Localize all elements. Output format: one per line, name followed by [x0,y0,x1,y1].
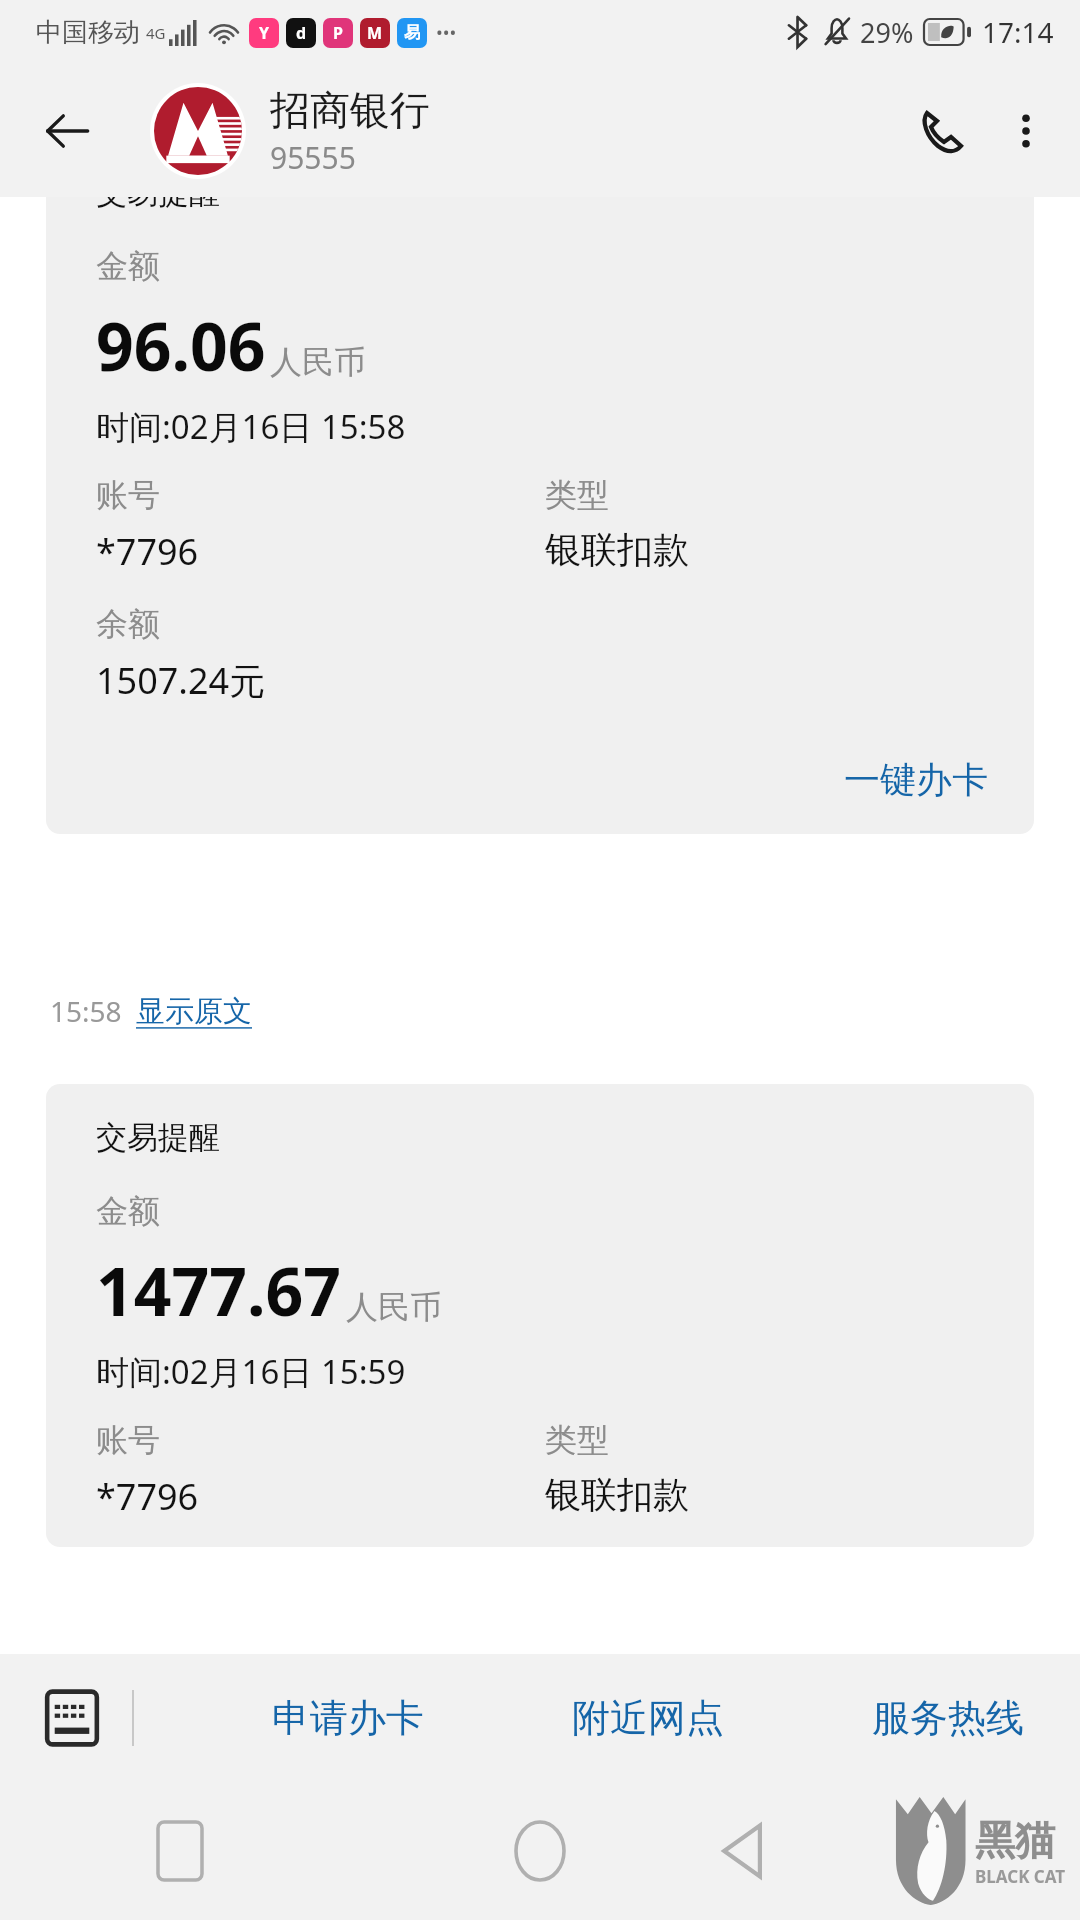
staticText: 96.06 [96,300,266,390]
staticText: BLACK CAT [975,1865,1066,1888]
button[interactable]: 显示原文 [136,993,252,1030]
staticText: 交易提醒 [96,197,220,212]
button[interactable]: Home [360,1782,720,1920]
button[interactable]: Keyboard [34,1680,110,1756]
button[interactable]: More options [986,91,1066,171]
staticText: 黑猫 [975,1815,1055,1865]
staticText: 4G [146,23,166,43]
staticText: 人民币 [270,342,366,382]
button[interactable]: 一键办卡 [838,751,994,808]
staticText: 易 [404,23,420,43]
staticText: 显示原文 [136,993,252,1030]
staticText: 账号 [96,1420,160,1460]
button[interactable]: 申请办卡 [262,1680,434,1756]
staticText: 17:14 [982,13,1054,51]
staticText: 类型 [545,1420,609,1460]
staticText: 银联扣款 [545,1472,689,1517]
staticText: 时间:02月16日 15:59 [96,1349,406,1394]
staticText: 金额 [96,1191,160,1231]
staticText: *7796 [96,527,199,576]
button[interactable]: Call [898,87,986,175]
staticText: 15:58 [50,992,122,1030]
staticText: 招商银行 [270,85,430,135]
staticText: 交易提醒 [96,1118,220,1157]
button[interactable]: Back [24,88,110,174]
staticText: 29% [860,14,914,51]
staticText: 银联扣款 [545,527,689,572]
staticText: P [333,22,343,44]
staticText: Y [259,22,270,44]
staticText: 服务热线 [872,1694,1024,1742]
staticText: 附近网点 [572,1694,724,1742]
button[interactable]: Back [720,1782,1080,1920]
staticText: 1507.24元 [96,656,266,705]
staticText: 人民币 [346,1287,442,1327]
staticText: 1477.67 [96,1245,342,1335]
staticText: M [367,22,383,44]
staticText: ••• [436,20,457,45]
staticText: 账号 [96,475,160,515]
staticText: 时间:02月16日 15:58 [96,404,406,449]
staticText: 余额 [96,604,160,644]
staticText: 申请办卡 [272,1694,424,1742]
button[interactable]: 交易提醒 [46,197,1034,834]
staticText: 一键办卡 [844,757,988,802]
staticText: 类型 [545,475,609,515]
staticText: 95555 [270,137,356,178]
staticText: 中国移动 [36,16,140,49]
staticText: *7796 [96,1472,199,1521]
button[interactable]: 服务热线 [862,1680,1034,1756]
staticText: 金额 [96,246,160,286]
button[interactable]: 交易提醒 [46,1084,1034,1547]
staticText: d [296,22,307,44]
button[interactable]: Recents [0,1782,360,1920]
button[interactable]: 附近网点 [562,1680,734,1756]
